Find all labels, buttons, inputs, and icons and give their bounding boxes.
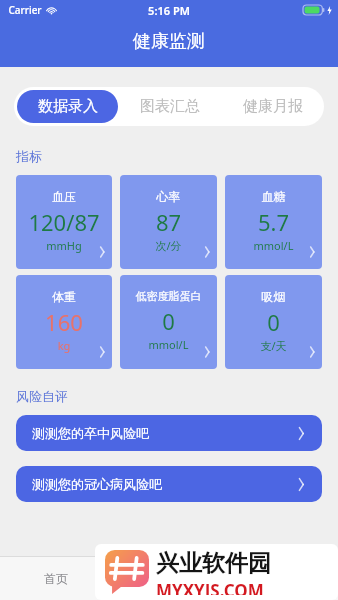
- staticText: 心率: [120, 189, 217, 204]
- staticText: 风险自评: [16, 388, 338, 404]
- staticText: kg: [16, 338, 112, 353]
- button[interactable]: 测测您的冠心病风险吧: [16, 466, 322, 502]
- button[interactable]: 首页: [0, 556, 112, 600]
- staticText: 测测您的卒中风险吧: [32, 425, 149, 441]
- staticText: 支/天: [225, 338, 322, 353]
- staticText: 次/分: [120, 238, 217, 253]
- staticText: 血压: [16, 189, 112, 204]
- staticText: 血糖: [225, 189, 322, 204]
- staticText: 5.7: [225, 207, 322, 237]
- button[interactable]: [225, 556, 338, 600]
- button[interactable]: 血压: [16, 175, 112, 269]
- staticText: 图表汇总: [140, 97, 200, 116]
- staticText: 兴业软件园: [156, 549, 271, 578]
- staticText: 测测您的冠心病风险吧: [32, 476, 162, 492]
- staticText: 指标: [16, 148, 338, 164]
- staticText: 0: [225, 307, 322, 337]
- staticText: mmHg: [16, 238, 112, 253]
- button[interactable]: 心率: [120, 175, 217, 269]
- button[interactable]: 健康月报: [221, 87, 324, 126]
- staticText: 5:16 PM: [148, 3, 190, 18]
- button[interactable]: 体重: [16, 275, 112, 369]
- staticText: 健康监测: [133, 30, 205, 53]
- button[interactable]: 低密度脂蛋白: [120, 275, 217, 369]
- staticText: 87: [120, 207, 217, 237]
- button[interactable]: 测测您的卒中风险吧: [16, 415, 322, 451]
- staticText: 首页: [44, 571, 68, 586]
- button[interactable]: 血糖: [225, 175, 322, 269]
- staticText: 0: [120, 306, 217, 336]
- staticText: mmol/L: [120, 337, 217, 352]
- staticText: 160: [16, 307, 112, 337]
- staticText: 120/87: [16, 207, 112, 237]
- staticText: 体重: [16, 289, 112, 304]
- staticText: Carrier: [8, 3, 42, 17]
- staticText: 健康月报: [243, 97, 303, 116]
- button[interactable]: 图表汇总: [118, 87, 221, 126]
- button[interactable]: 吸烟: [225, 275, 322, 369]
- staticText: MYXYJS.COM: [156, 579, 264, 595]
- staticText: 健康: [157, 571, 181, 586]
- button[interactable]: 健康: [112, 556, 225, 600]
- staticText: 低密度脂蛋白: [120, 289, 217, 303]
- staticText: 吸烟: [225, 289, 322, 304]
- staticText: mmol/L: [225, 238, 322, 253]
- button[interactable]: 数据录入: [17, 90, 118, 123]
- staticText: 数据录入: [38, 97, 98, 116]
